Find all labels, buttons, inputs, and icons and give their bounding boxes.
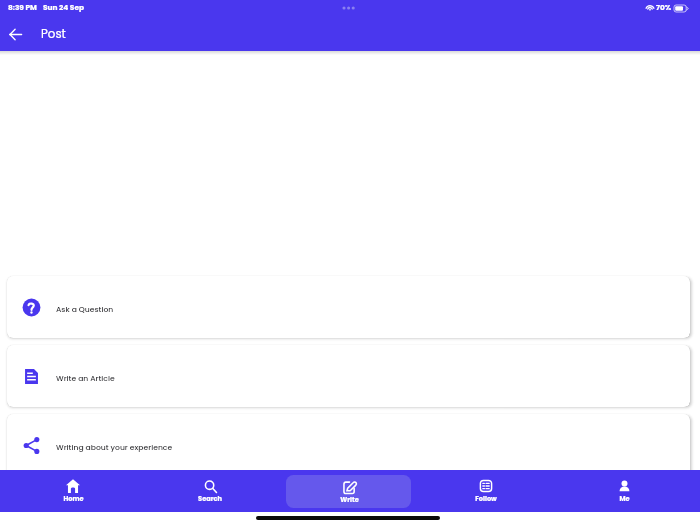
- staticText: 70%: [656, 2, 672, 12]
- button[interactable]: Ask a Question: [7, 276, 690, 338]
- staticText: Follow: [475, 494, 497, 503]
- staticText: Me: [619, 494, 630, 503]
- staticText: Ask a Question: [56, 304, 114, 315]
- button[interactable]: Back: [3, 22, 28, 47]
- staticText: Search: [198, 494, 222, 503]
- button[interactable]: Write an Article: [7, 345, 690, 407]
- staticText: Write: [340, 495, 359, 504]
- staticText: Post: [41, 26, 66, 43]
- button[interactable]: Writing about your experience: [7, 414, 690, 476]
- button[interactable]: Home: [4, 470, 141, 512]
- staticText: Write an Article: [56, 373, 115, 384]
- staticText: Home: [63, 494, 84, 503]
- button[interactable]: Follow: [417, 470, 555, 512]
- button[interactable]: Me: [555, 470, 693, 512]
- staticText: Sun 24 Sep: [43, 2, 84, 12]
- staticText: Writing about your experience: [56, 442, 173, 453]
- button[interactable]: Search: [141, 470, 279, 512]
- staticText: 8:39 PM: [8, 2, 37, 12]
- button[interactable]: Write: [286, 475, 411, 508]
